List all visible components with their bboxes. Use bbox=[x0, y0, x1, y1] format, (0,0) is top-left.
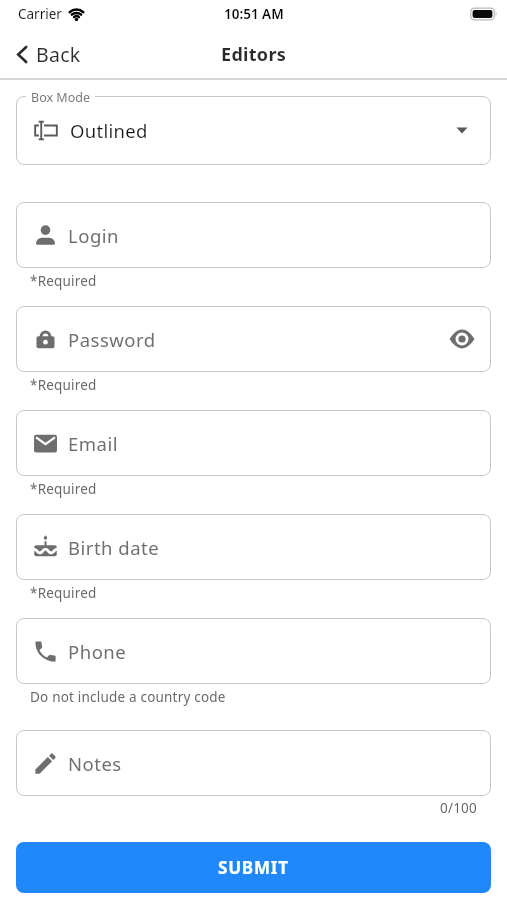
staticText: *Required bbox=[30, 480, 97, 498]
button[interactable]: Login bbox=[16, 202, 491, 268]
staticText: Outlined bbox=[70, 118, 148, 143]
staticText: Email bbox=[68, 431, 119, 456]
staticText: Editors bbox=[221, 42, 287, 67]
button[interactable]: Notes bbox=[16, 730, 491, 796]
staticText: Notes bbox=[68, 751, 122, 776]
staticText: *Required bbox=[30, 584, 97, 602]
staticText: 0/100 bbox=[440, 799, 477, 817]
staticText: *Required bbox=[30, 376, 97, 394]
button[interactable]: Password bbox=[16, 306, 491, 372]
button[interactable]: SUBMIT bbox=[16, 842, 491, 893]
button[interactable]: Email bbox=[16, 410, 491, 476]
staticText: Do not include a country code bbox=[30, 688, 226, 706]
staticText: SUBMIT bbox=[218, 856, 289, 879]
button[interactable]: Back bbox=[16, 41, 81, 68]
staticText: Birth date bbox=[68, 535, 160, 560]
staticText: Phone bbox=[68, 639, 127, 664]
staticText: Carrier bbox=[18, 5, 62, 23]
button[interactable]: Outlined bbox=[16, 96, 491, 165]
staticText: 10:51 AM bbox=[224, 5, 284, 23]
staticText: Login bbox=[68, 223, 119, 248]
staticText: Back bbox=[36, 41, 81, 68]
staticText: Password bbox=[68, 327, 156, 352]
staticText: Box Mode bbox=[31, 89, 90, 106]
staticText: *Required bbox=[30, 272, 97, 290]
button[interactable]: Phone bbox=[16, 618, 491, 684]
button[interactable]: Birth date bbox=[16, 514, 491, 580]
